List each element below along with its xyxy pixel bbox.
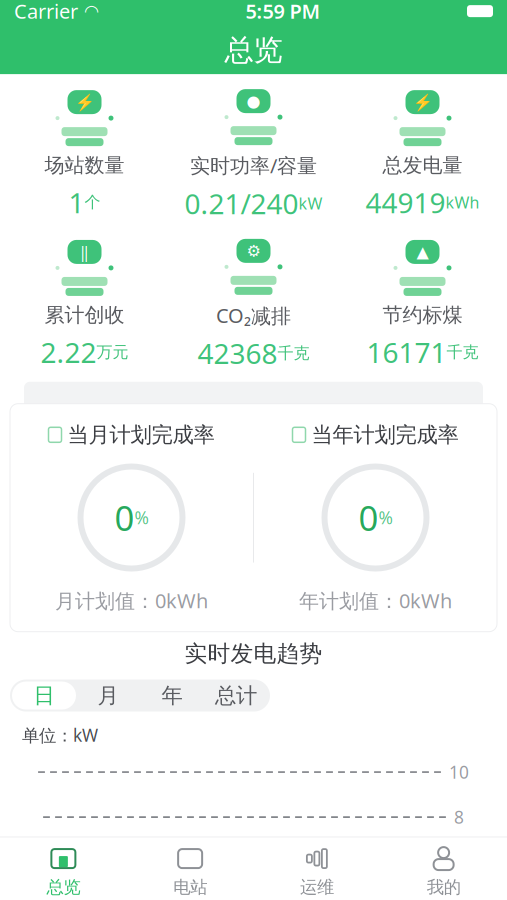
- staticText: 0.21/240: [184, 185, 298, 222]
- staticText: %: [378, 506, 392, 529]
- staticText: 10: [449, 761, 469, 784]
- staticText: ⚙: [246, 242, 260, 260]
- staticText: 个: [84, 192, 100, 212]
- staticText: ◠: [84, 1, 99, 21]
- staticText: 节约标煤: [382, 303, 462, 327]
- staticText: 单位：kW: [22, 723, 98, 746]
- staticText: 总览: [224, 32, 282, 68]
- staticText: 当年计划完成率: [311, 422, 458, 448]
- staticText: 年: [161, 682, 182, 709]
- staticText: 月计划值：0kWh: [55, 587, 208, 614]
- staticText: kW: [298, 193, 322, 214]
- staticText: %: [134, 506, 148, 529]
- staticText: 运维: [300, 877, 334, 898]
- button[interactable]: 总计: [204, 681, 268, 709]
- staticText: 总发电量: [382, 153, 462, 178]
- button[interactable]: 日: [12, 681, 76, 709]
- staticText: 场站数量: [44, 153, 124, 178]
- staticText: 年计划值：0kWh: [299, 587, 452, 614]
- staticText: 8: [454, 806, 464, 829]
- staticText: 44919: [365, 184, 445, 221]
- staticText: 万元: [96, 342, 128, 362]
- staticText: 实时功率/容量: [190, 152, 317, 179]
- staticText: 0: [114, 494, 134, 540]
- staticText: 累计创收: [44, 303, 124, 327]
- staticText: 电站: [173, 877, 207, 898]
- staticText: 1: [68, 184, 84, 221]
- staticText: 千克: [277, 343, 309, 363]
- staticText: 2.22: [40, 333, 96, 371]
- staticText: 千克: [446, 342, 478, 362]
- staticText: ‖: [80, 241, 89, 262]
- staticText: 实时发电趋势: [184, 640, 322, 667]
- staticText: 日: [33, 682, 54, 709]
- staticText: Carrier: [14, 0, 78, 24]
- button[interactable]: 电站: [127, 838, 254, 900]
- staticText: 5:59 PM: [245, 0, 320, 24]
- staticText: 总计: [215, 682, 257, 709]
- staticText: 当月计划完成率: [67, 422, 214, 448]
- staticText: 我的: [427, 877, 461, 898]
- button[interactable]: 月: [76, 681, 140, 709]
- button[interactable]: 年: [140, 681, 204, 709]
- staticText: 42368: [197, 334, 277, 372]
- staticText: ⚡: [74, 93, 94, 111]
- button[interactable]: 总览: [0, 838, 127, 900]
- staticText: ▲: [416, 243, 428, 261]
- staticText: 月: [97, 682, 118, 709]
- button[interactable]: 运维: [253, 838, 380, 900]
- staticText: CO₂减排: [216, 302, 291, 329]
- staticText: ⚡: [412, 93, 432, 111]
- staticText: ●: [246, 92, 260, 110]
- staticText: 16171: [366, 333, 446, 371]
- staticText: 总览: [46, 877, 80, 898]
- button[interactable]: 我的: [380, 838, 507, 900]
- staticText: 0: [358, 494, 378, 540]
- staticText: kWh: [445, 192, 479, 213]
